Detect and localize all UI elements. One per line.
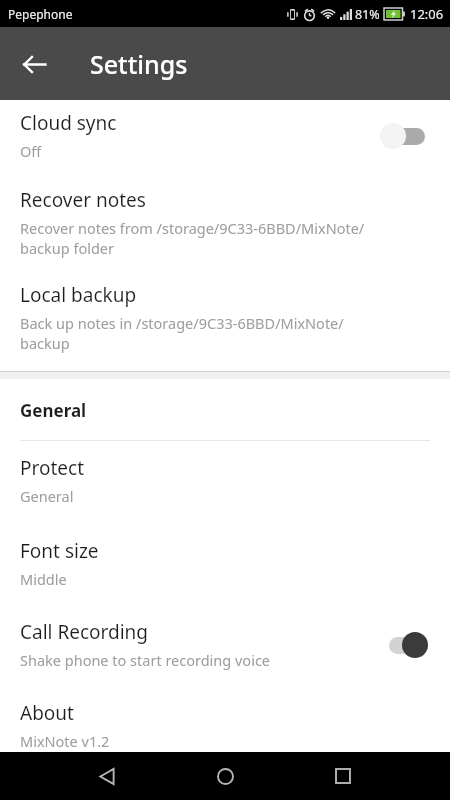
staticText: Off	[20, 141, 42, 161]
button[interactable]: Home	[201, 752, 249, 800]
staticText: Recover notes from /storage/9C33-6BBD/Mi…	[20, 218, 365, 238]
button[interactable]: Back	[10, 40, 58, 88]
staticText: Font size	[20, 538, 99, 564]
staticText: Settings	[90, 47, 188, 81]
button[interactable]: Cloud sync	[0, 100, 450, 163]
staticText: 12:06	[410, 5, 444, 23]
button[interactable]: Font size	[0, 508, 450, 591]
button[interactable]: Recover notes	[0, 163, 450, 260]
staticText: Recover notes	[20, 187, 146, 213]
button[interactable]: Back	[83, 752, 131, 800]
staticText: About	[20, 700, 74, 726]
button[interactable]: Switch off	[380, 120, 434, 152]
staticText: Back up notes in /storage/9C33-6BBD/MixN…	[20, 313, 344, 333]
staticText: Protect	[20, 455, 85, 481]
staticText: 81%	[355, 6, 380, 23]
button[interactable]: Protect	[0, 441, 450, 508]
button[interactable]: Call Recording	[0, 591, 450, 672]
staticText: backup folder	[20, 238, 114, 258]
button[interactable]: About	[0, 672, 450, 752]
staticText: Cloud sync	[20, 110, 117, 136]
staticText: backup	[20, 333, 70, 353]
button[interactable]: Recents	[319, 752, 367, 800]
staticText: Pepephone	[8, 6, 73, 22]
staticText: Middle	[20, 569, 67, 589]
staticText: Call Recording	[20, 619, 149, 645]
button[interactable]: Local backup	[0, 260, 450, 355]
staticText: Local backup	[20, 282, 137, 308]
staticText: General	[20, 486, 74, 506]
button[interactable]: Switch on	[380, 629, 434, 661]
staticText: MixNote v1.2	[20, 731, 110, 750]
staticText: General	[20, 399, 87, 422]
staticText: Shake phone to start recording voice	[20, 650, 271, 670]
